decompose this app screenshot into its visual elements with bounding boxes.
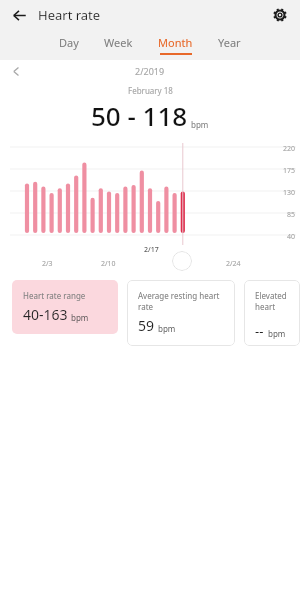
button[interactable]: Previous month bbox=[6, 61, 26, 81]
staticText: rate bbox=[138, 301, 154, 312]
staticText: 175 bbox=[283, 166, 296, 176]
staticText: bpm bbox=[158, 323, 176, 334]
staticText: 59 bbox=[138, 316, 155, 335]
staticText: 220 bbox=[283, 144, 296, 154]
staticText: 40-163 bbox=[23, 305, 68, 324]
staticText: 50 - 118 bbox=[91, 98, 188, 133]
staticText: Month bbox=[158, 35, 193, 50]
staticText: Heart rate bbox=[38, 6, 101, 24]
button[interactable]: Year bbox=[216, 32, 243, 58]
staticText: 2/10 bbox=[101, 259, 116, 269]
staticText: bpm bbox=[268, 328, 286, 339]
button[interactable]: Week bbox=[102, 32, 135, 58]
button[interactable]: Elevated heart bbox=[244, 280, 300, 346]
button[interactable]: Average resting heart bbox=[127, 280, 235, 346]
staticText: bpm bbox=[191, 119, 209, 130]
staticText: -- bbox=[255, 322, 264, 340]
button[interactable]: Back bbox=[7, 3, 31, 27]
staticText: Elevated heart bbox=[255, 290, 294, 312]
staticText: Average resting heart bbox=[138, 290, 220, 301]
staticText: 2/2019 bbox=[135, 65, 165, 77]
staticText: 40 bbox=[287, 232, 296, 242]
button[interactable]: Day bbox=[57, 32, 81, 58]
staticText: Day bbox=[59, 35, 79, 50]
staticText: 2/3 bbox=[42, 259, 53, 269]
staticText: 85 bbox=[287, 210, 296, 220]
button[interactable]: Scrubber bbox=[172, 251, 192, 271]
staticText: Year bbox=[218, 35, 241, 50]
staticText: February 18 bbox=[128, 85, 173, 96]
staticText: 2/17 bbox=[144, 245, 159, 255]
staticText: 130 bbox=[283, 188, 296, 198]
button[interactable]: Heart rate range bbox=[12, 280, 118, 334]
staticText: Heart rate range bbox=[23, 290, 86, 301]
button[interactable]: Month bbox=[156, 32, 195, 58]
staticText: bpm bbox=[71, 312, 89, 323]
staticText: Week bbox=[104, 35, 133, 50]
button[interactable]: Settings bbox=[268, 3, 292, 27]
staticText: 2/24 bbox=[226, 259, 241, 269]
